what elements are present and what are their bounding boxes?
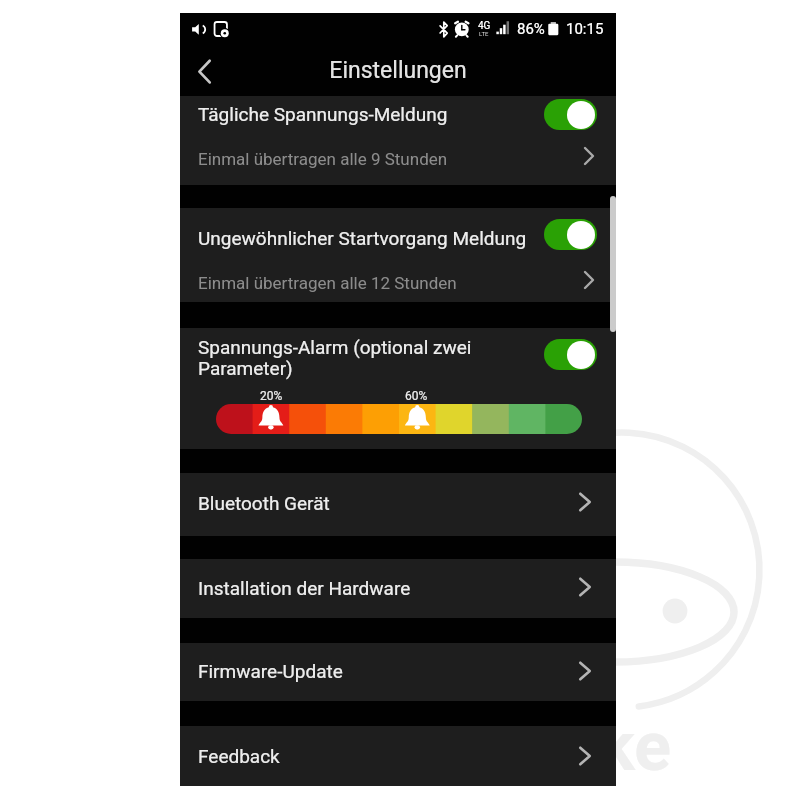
- staticText: LTE: [479, 30, 489, 37]
- button[interactable]: Toggle on: [544, 339, 597, 370]
- staticText: 10:15: [566, 20, 604, 38]
- button[interactable]: Toggle on: [544, 219, 597, 250]
- button[interactable]: Bluetooth Gerät: [180, 473, 616, 536]
- button[interactable]: Toggle on: [544, 99, 597, 130]
- button[interactable]: Feedback: [180, 726, 616, 786]
- staticText: Einmal übertragen alle 9 Stunden: [198, 149, 448, 169]
- button[interactable]: Einmal übertragen alle 9 Stunden: [180, 130, 616, 185]
- button[interactable]: Einmal übertragen alle 12 Stunden: [180, 250, 616, 302]
- staticText: Feedback: [198, 745, 280, 767]
- button[interactable]: Back: [182, 48, 227, 93]
- staticText: 86%: [517, 20, 545, 38]
- staticText: Einstellungen: [180, 57, 616, 84]
- staticText: Ungewöhnlicher Startvorgang Meldung: [198, 227, 527, 249]
- button[interactable]: Voltage alarm thresholds: [216, 404, 582, 434]
- staticText: Mike: [521, 707, 671, 787]
- staticText: 60%: [405, 389, 428, 403]
- staticText: Bluetooth Gerät: [198, 492, 330, 514]
- staticText: Installation der Hardware: [198, 577, 411, 599]
- staticText: Einmal übertragen alle 12 Stunden: [198, 273, 457, 293]
- button[interactable]: Firmware-Update: [180, 643, 616, 701]
- staticText: 20%: [260, 389, 283, 403]
- staticText: Spannungs-Alarm (optional zwei Parameter…: [198, 336, 472, 380]
- button[interactable]: Installation der Hardware: [180, 559, 616, 618]
- button[interactable]: [180, 328, 616, 390]
- staticText: Firmware-Update: [198, 660, 343, 682]
- button[interactable]: Tägliche Spannungs-Meldung: [180, 96, 616, 130]
- staticText: Tägliche Spannungs-Meldung: [198, 103, 448, 125]
- button[interactable]: Ungewöhnlicher Startvorgang Meldung: [180, 208, 616, 250]
- staticText: 4G: [478, 20, 491, 32]
